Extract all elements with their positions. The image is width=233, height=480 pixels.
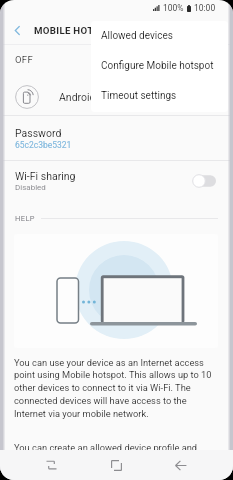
button[interactable]: Password (0, 116, 233, 160)
button[interactable]: Home (94, 450, 138, 480)
staticText: OFF (15, 54, 33, 65)
staticText: HELP (15, 214, 35, 223)
staticText: Disabled (15, 183, 46, 192)
staticText: Wi-Fi sharing (15, 170, 76, 182)
staticText: Password (15, 127, 62, 139)
staticText: You can create an allowed device profile… (14, 442, 198, 453)
staticText: You can use your device as an Internet a… (14, 357, 219, 420)
staticText: 100% (163, 3, 184, 13)
button[interactable]: Back (159, 450, 203, 480)
staticText: Android (59, 91, 96, 103)
staticText: 10:00 (194, 3, 216, 13)
button[interactable]: Wi-Fi sharing (0, 161, 233, 207)
button[interactable]: Android (0, 78, 233, 115)
button[interactable]: Allowed devices (91, 21, 228, 51)
staticText: Allowed devices (101, 30, 173, 42)
button[interactable]: Navigate up (0, 16, 34, 45)
staticText: Timeout settings (101, 90, 177, 102)
button[interactable]: Timeout settings (91, 81, 228, 111)
staticText: MOBILE HOTSPOT (34, 25, 120, 36)
staticText: Configure Mobile hotspot (101, 60, 214, 72)
button[interactable]: Recent apps (29, 450, 73, 480)
button[interactable]: Configure Mobile hotspot (91, 51, 228, 81)
staticText: 65c2c3be5321 (15, 140, 72, 150)
